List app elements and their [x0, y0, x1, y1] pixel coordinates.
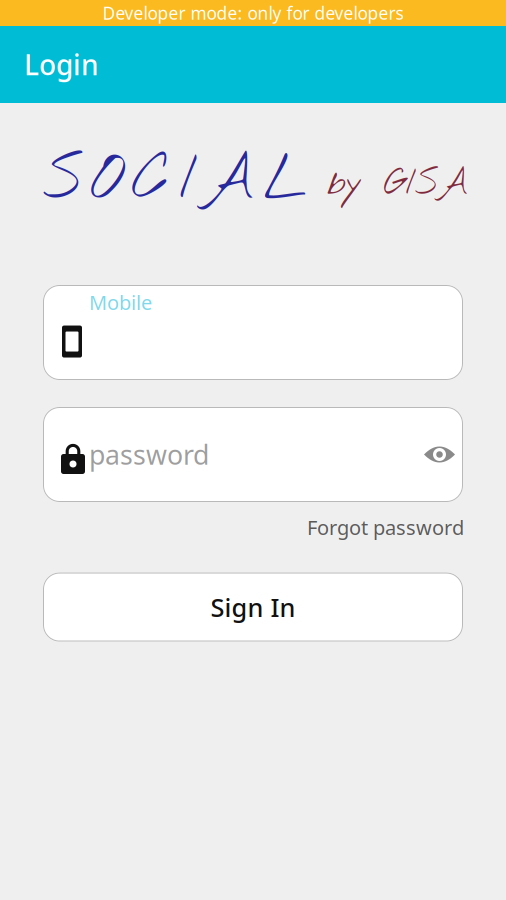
staticText: Mobile — [89, 289, 152, 316]
staticText: SOCIAL — [43, 140, 306, 222]
staticText: Sign In — [210, 590, 295, 624]
button[interactable]: Show password — [418, 438, 461, 470]
staticText: password — [89, 437, 209, 472]
staticText: Developer mode: only for developers — [102, 1, 403, 24]
staticText: Login — [24, 46, 99, 83]
staticText: by GISA — [327, 160, 468, 208]
button[interactable]: Sign In — [43, 573, 463, 642]
button[interactable]: Forgot password — [307, 510, 464, 545]
staticText: Forgot password — [307, 514, 464, 541]
